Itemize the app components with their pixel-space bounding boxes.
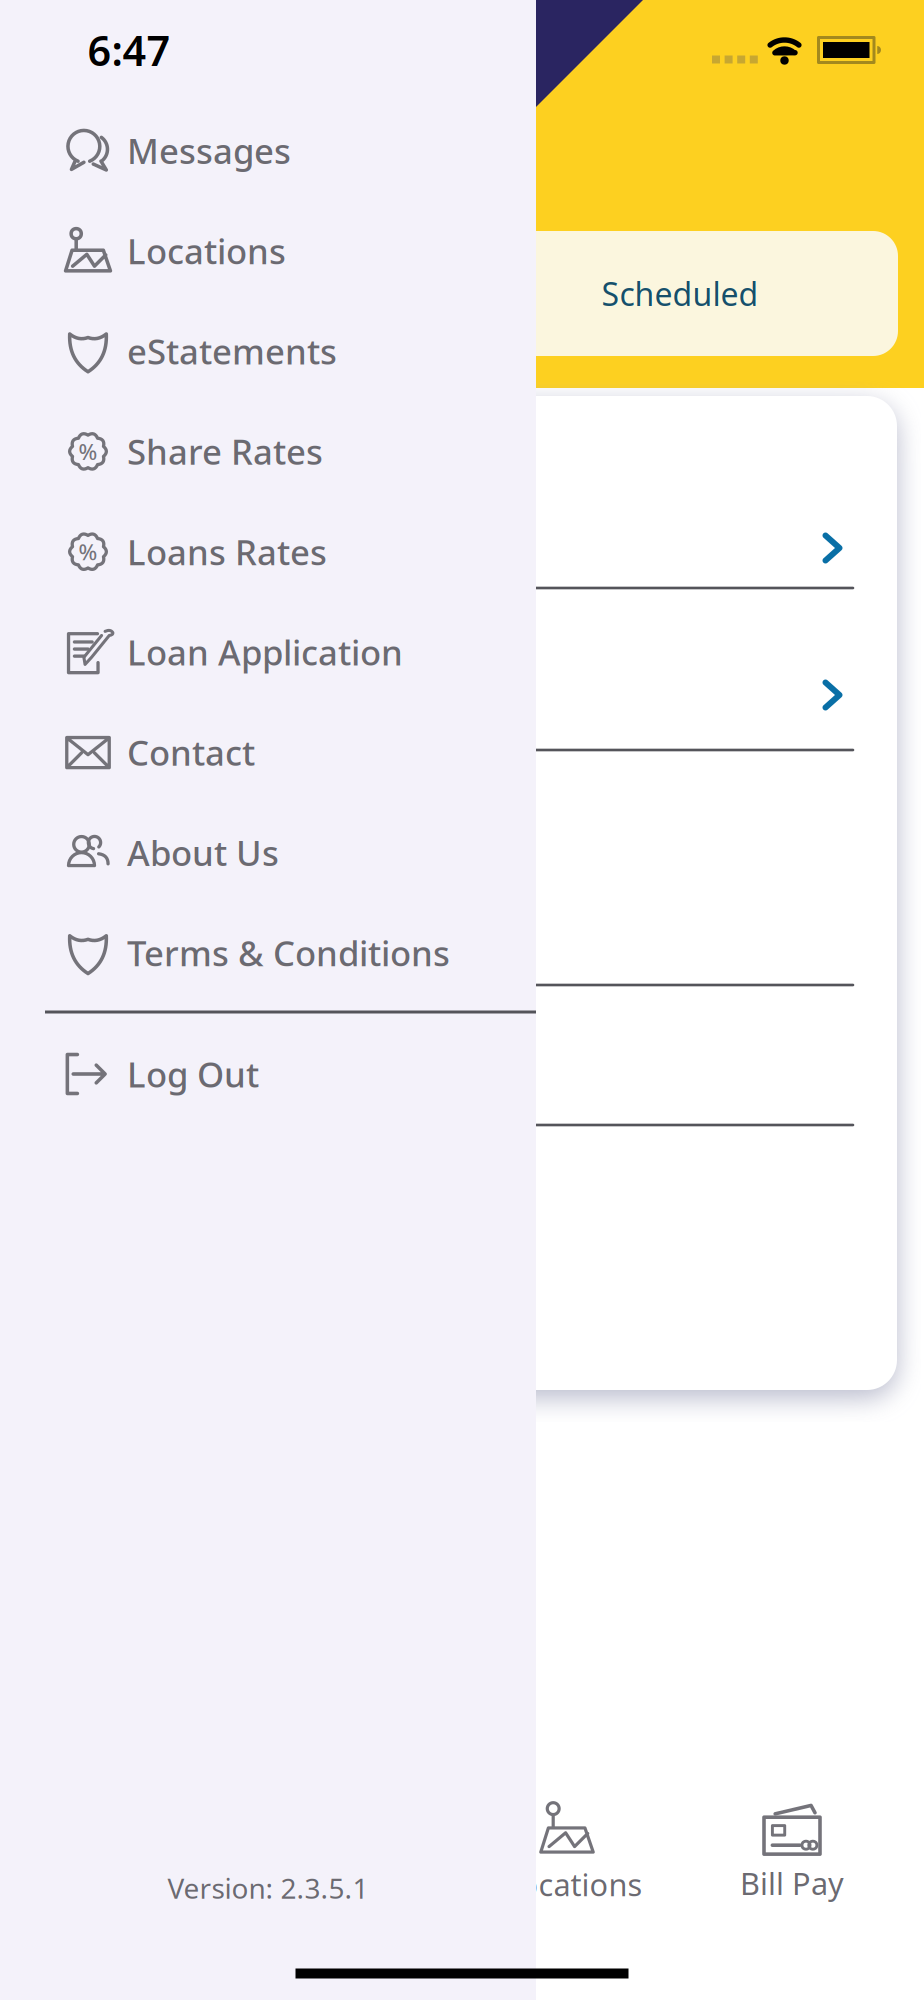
staticText: Locations xyxy=(503,1864,642,1905)
staticText: eStatements xyxy=(127,328,337,374)
button[interactable]: % xyxy=(66,502,536,602)
staticText: Bill Pay xyxy=(740,1863,844,1903)
staticText: Terms & Conditions xyxy=(127,930,450,976)
staticText: Log Out xyxy=(127,1051,259,1097)
staticText: About Us xyxy=(127,830,279,876)
button[interactable]: Messages xyxy=(66,100,536,200)
button[interactable]: Bill Pay xyxy=(687,1774,897,1924)
button[interactable]: About Us xyxy=(66,803,536,903)
staticText: Loans Rates xyxy=(127,529,327,575)
staticText: Version: 2.3.5.1 xyxy=(167,1869,368,1907)
button[interactable]: Contact xyxy=(66,702,536,802)
staticText: Share Rates xyxy=(127,428,323,474)
staticText: % xyxy=(80,439,96,464)
staticText: 6:47 xyxy=(87,23,170,77)
staticText: Locations xyxy=(127,228,286,274)
staticText: Contact xyxy=(127,729,255,775)
button[interactable]: Scheduled xyxy=(462,231,898,356)
button[interactable]: Locations xyxy=(468,1774,678,1924)
button[interactable]: eStatements xyxy=(66,301,536,401)
button[interactable]: Scheduled transfer 1 xyxy=(540,468,890,628)
button[interactable]: Log Out xyxy=(66,1024,536,1124)
staticText: Loan Application xyxy=(127,629,403,675)
button[interactable]: Scheduled transfer 2 xyxy=(540,625,890,765)
button[interactable]: % xyxy=(66,401,536,501)
staticText: % xyxy=(80,539,96,564)
staticText: Messages xyxy=(127,127,291,173)
button[interactable]: Loan Application xyxy=(66,602,536,702)
staticText: Scheduled xyxy=(601,272,758,315)
button[interactable]: Terms & Conditions xyxy=(66,903,536,1003)
button[interactable]: Locations xyxy=(66,201,536,301)
